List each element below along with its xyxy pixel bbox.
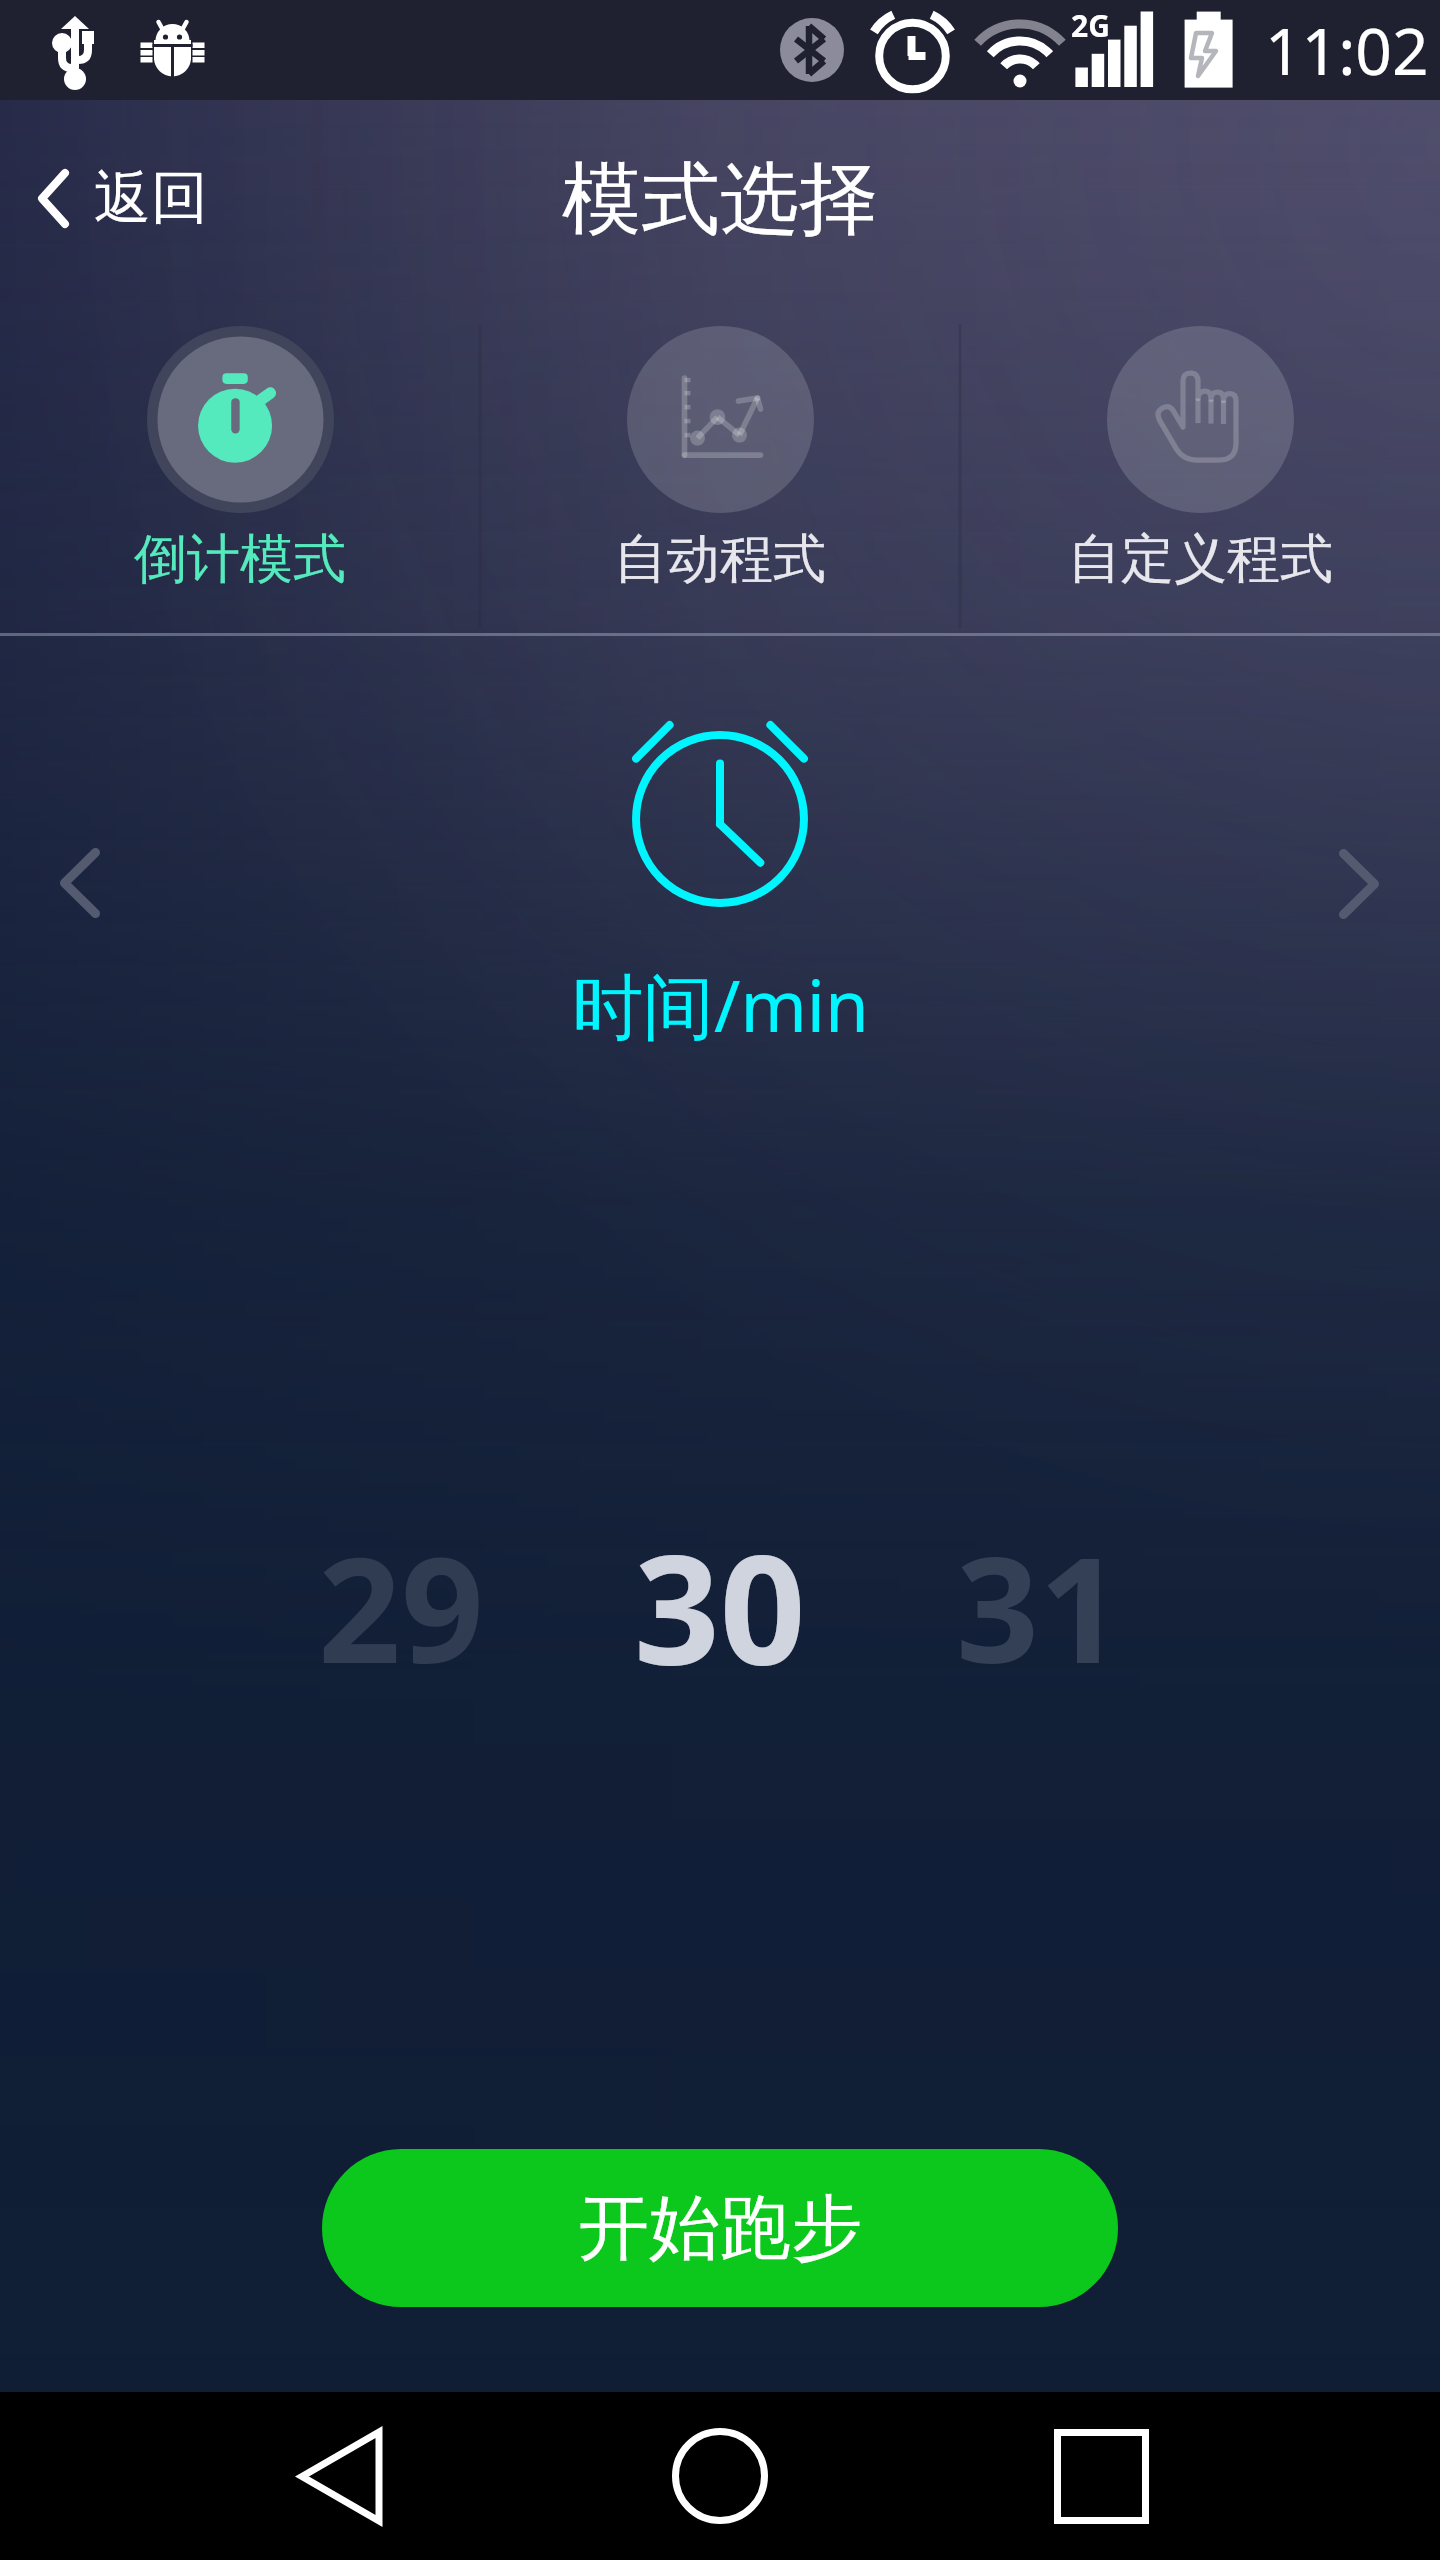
button[interactable]: 返回 — [0, 142, 242, 254]
staticText: 自定义程式 — [1068, 526, 1333, 593]
button[interactable]: 自定义程式 — [960, 296, 1440, 636]
staticText: 30 — [634, 1504, 806, 1708]
staticText: 返回 — [94, 162, 208, 234]
button[interactable]: Back — [275, 2411, 405, 2541]
button[interactable]: Previous — [20, 823, 140, 943]
button[interactable]: 自动程式 — [480, 296, 960, 636]
staticText: 时间/min — [572, 956, 869, 1053]
button[interactable]: 倒计模式 — [0, 296, 480, 636]
staticText: 29 — [318, 1508, 484, 1705]
button[interactable]: Recents — [1036, 2411, 1166, 2541]
button[interactable]: 开始跑步 — [322, 2149, 1118, 2307]
staticText: 倒计模式 — [134, 526, 346, 593]
staticText: 11:02 — [1265, 7, 1429, 94]
staticText: 31 — [956, 1508, 1122, 1705]
staticText: 2G — [1071, 5, 1110, 46]
button[interactable]: Next — [1299, 824, 1419, 944]
button[interactable]: Home — [655, 2411, 785, 2541]
staticText: 模式选择 — [562, 150, 878, 250]
staticText: 开始跑步 — [578, 2184, 862, 2273]
staticText: 自动程式 — [614, 526, 826, 593]
